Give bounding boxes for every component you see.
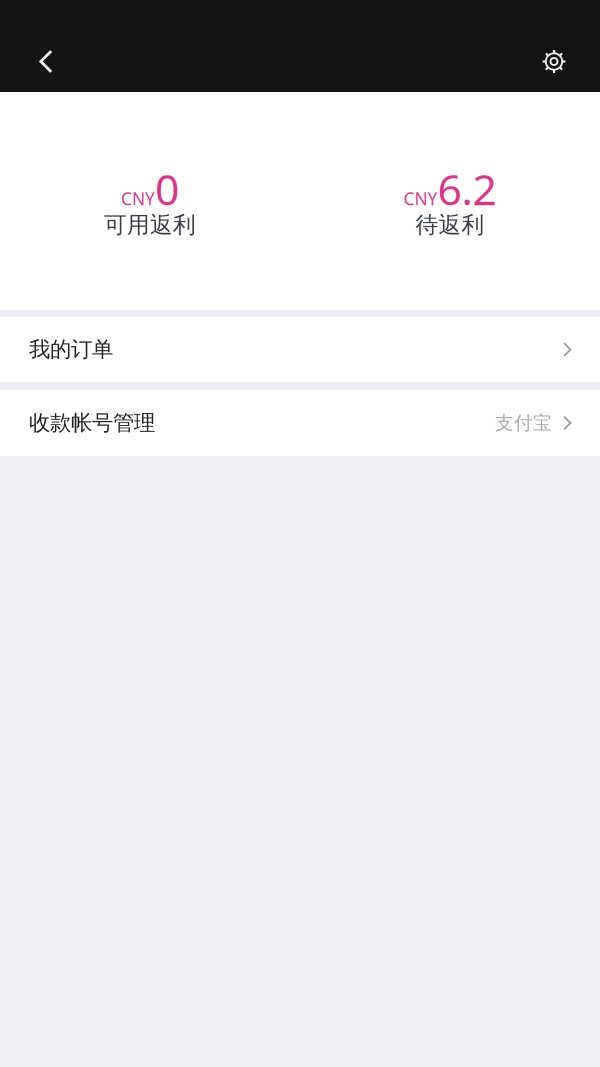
button[interactable]: Settings [524,31,584,91]
button[interactable]: 收款帐号管理 [0,390,600,456]
button[interactable]: 我的订单 [0,317,600,382]
staticText: 待返利 [415,211,484,239]
staticText: CNY [403,187,437,210]
button[interactable]: Back [16,31,76,91]
staticText: 支付宝 [495,411,552,434]
staticText: 可用返利 [104,211,196,239]
staticText: 收款帐号管理 [29,410,155,436]
staticText: 我的订单 [29,336,113,363]
staticText: CNY [121,187,155,210]
staticText: 6.2 [437,160,496,217]
staticText: 0 [155,160,179,217]
